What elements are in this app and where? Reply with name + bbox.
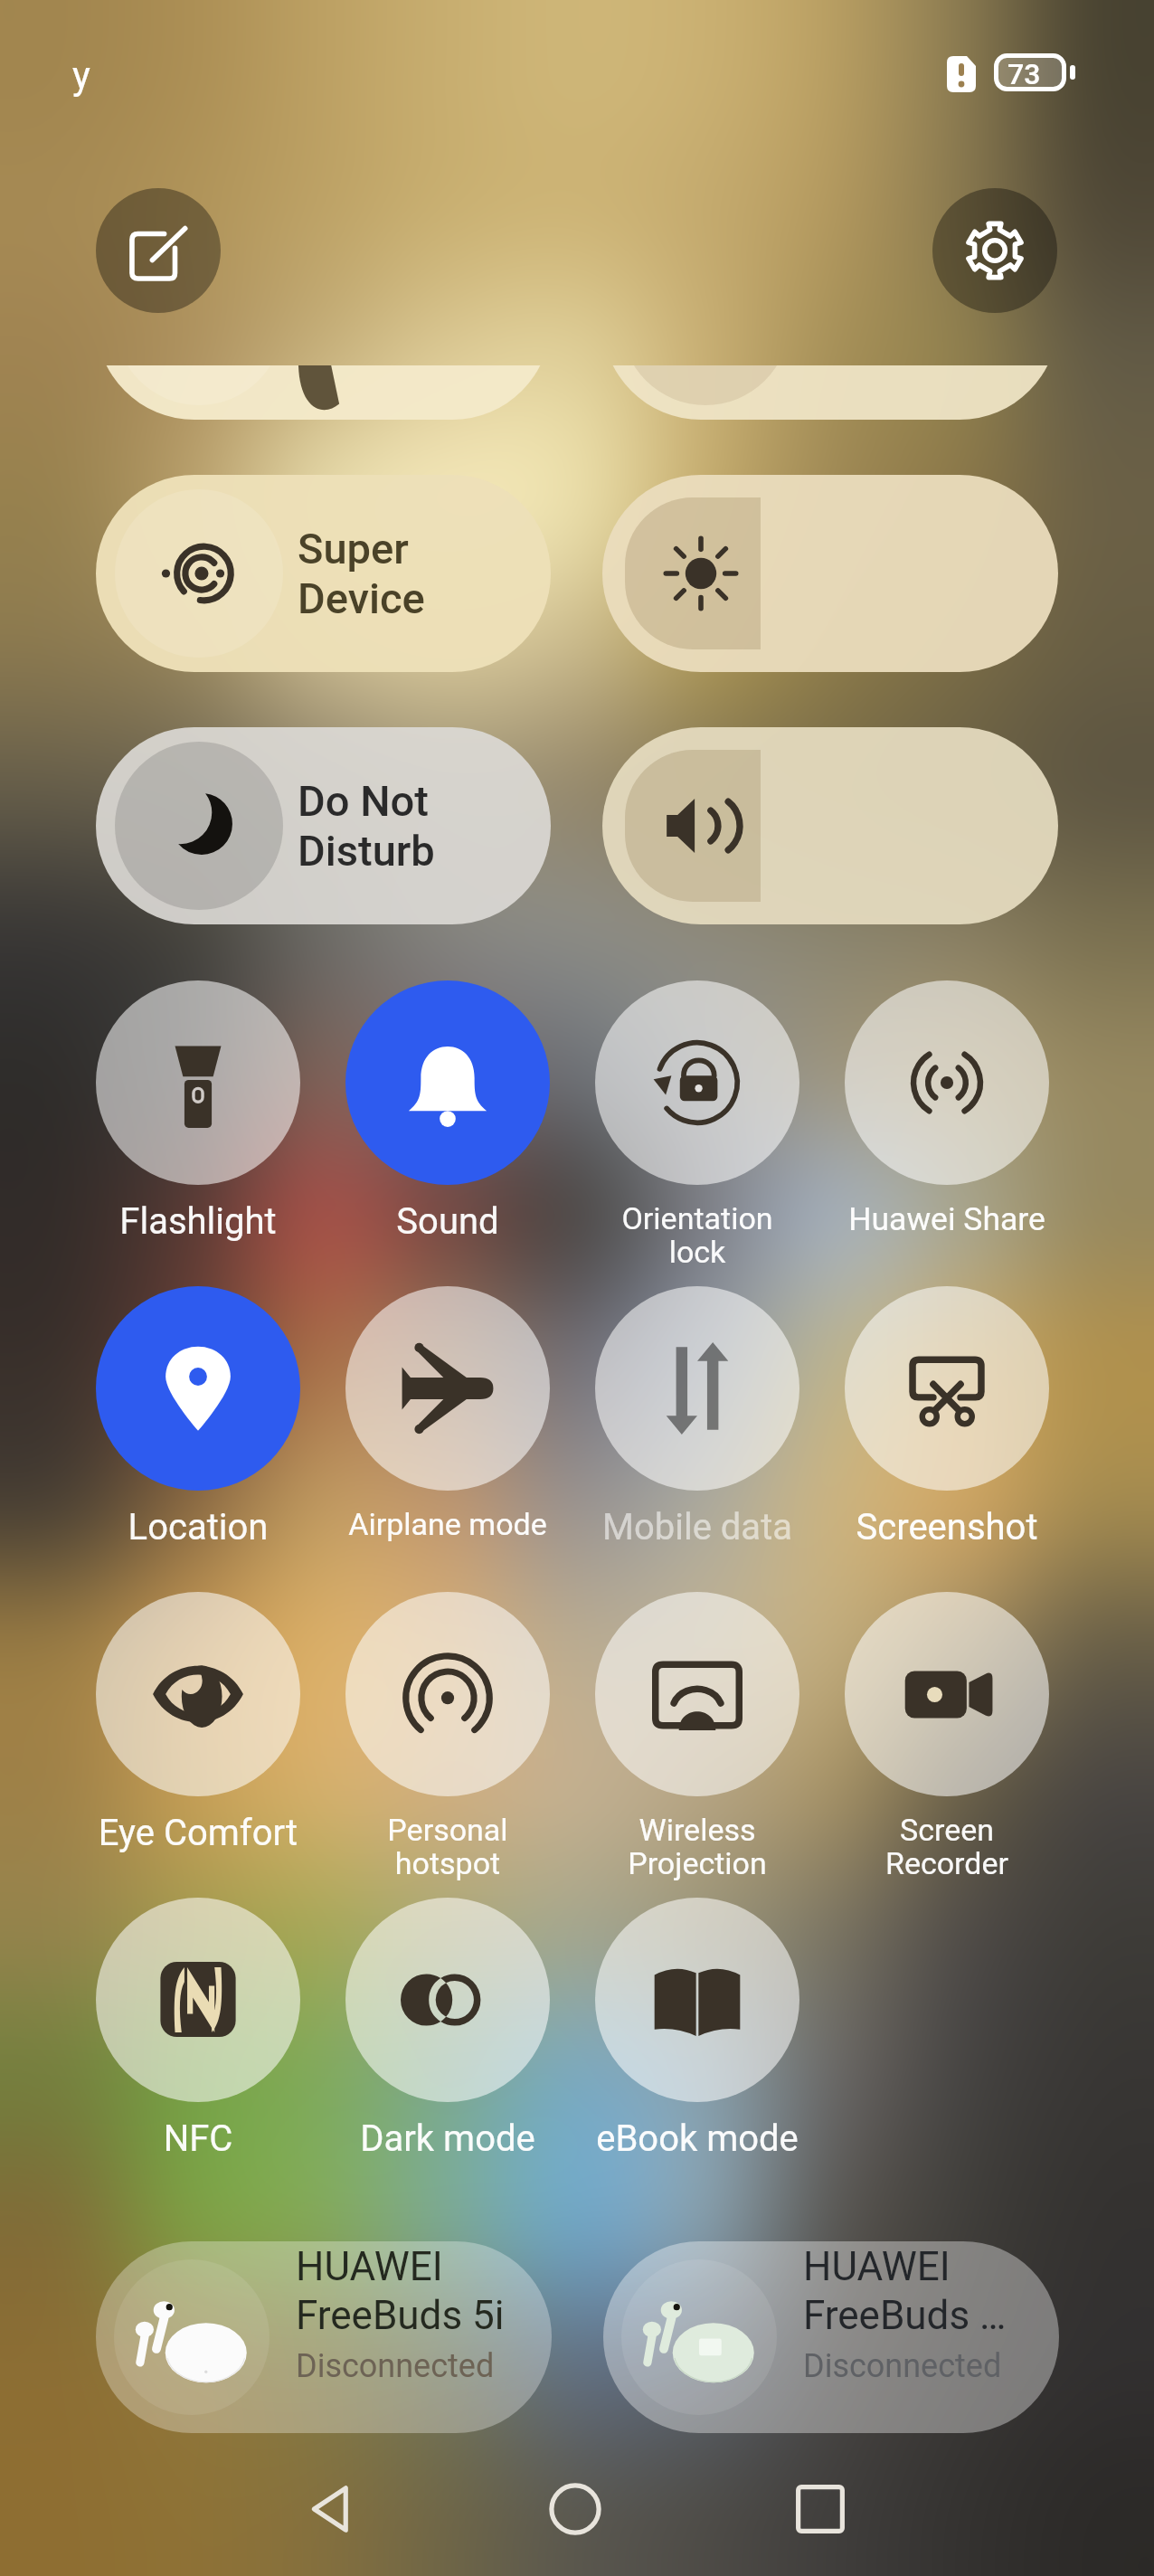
button[interactable]: NFC [73, 1898, 323, 2160]
staticText: eBook mode [572, 2117, 822, 2160]
staticText: Mobile data [572, 1506, 822, 1548]
staticText: Do Not Disturb [298, 776, 435, 876]
button[interactable]: Airplane mode [323, 1286, 572, 1542]
staticText: Personal hotspot [323, 1812, 572, 1881]
button[interactable]: Screen Recorder [822, 1592, 1072, 1881]
button[interactable]: Do Not Disturb [96, 727, 551, 924]
button[interactable]: Location [73, 1286, 323, 1548]
button[interactable]: Home [521, 2455, 629, 2563]
button[interactable]: HUAWEI FreeBuds … [603, 2241, 1059, 2433]
button[interactable]: Back [277, 2455, 385, 2563]
button[interactable]: Flashlight [73, 980, 323, 1243]
staticText: Dark mode [323, 2117, 572, 2160]
staticText: HUAWEI FreeBuds … [803, 2243, 1007, 2338]
button[interactable]: Eye Comfort [73, 1592, 323, 1854]
button[interactable]: Volume [602, 727, 1058, 924]
button[interactable]: Settings [932, 188, 1057, 313]
staticText: Super Device [298, 524, 425, 623]
button[interactable]: Super Device [96, 475, 551, 672]
staticText: HUAWEI FreeBuds 5i [296, 2243, 505, 2338]
button[interactable]: Recents [766, 2455, 875, 2563]
staticText: Huawei Share [822, 1200, 1072, 1238]
button[interactable]: Wireless Projection [572, 1592, 822, 1881]
staticText: Flashlight [73, 1200, 323, 1243]
button[interactable]: WLAN [96, 365, 551, 420]
button[interactable]: Edit [96, 188, 221, 313]
staticText: Location [73, 1506, 323, 1548]
button[interactable]: HUAWEI FreeBuds 5i [96, 2241, 552, 2433]
button[interactable]: Sound [323, 980, 572, 1243]
staticText: Eye Comfort [73, 1812, 323, 1854]
staticText: Wireless Projection [572, 1812, 822, 1881]
staticText: 73 [1007, 57, 1041, 91]
staticText: Disconnected [296, 2347, 495, 2385]
button[interactable]: Mobile data [572, 1286, 822, 1548]
staticText: Sound [323, 1200, 572, 1243]
button[interactable]: Personal hotspot [323, 1592, 572, 1881]
button[interactable]: Orientation lock [572, 980, 822, 1270]
staticText: Disconnected [803, 2347, 1002, 2385]
staticText: Screen Recorder [822, 1812, 1072, 1881]
staticText: Screenshot [822, 1506, 1072, 1548]
button[interactable]: Bluetooth [602, 365, 1058, 420]
button[interactable]: eBook mode [572, 1898, 822, 2160]
button[interactable]: Huawei Share [822, 980, 1072, 1238]
staticText: y [72, 53, 90, 98]
button[interactable]: Screenshot [822, 1286, 1072, 1548]
staticText: Airplane mode [323, 1506, 572, 1542]
staticText: Orientation lock [572, 1200, 822, 1270]
button[interactable]: Dark mode [323, 1898, 572, 2160]
button[interactable]: Brightness [602, 475, 1058, 672]
staticText: NFC [73, 2117, 323, 2160]
